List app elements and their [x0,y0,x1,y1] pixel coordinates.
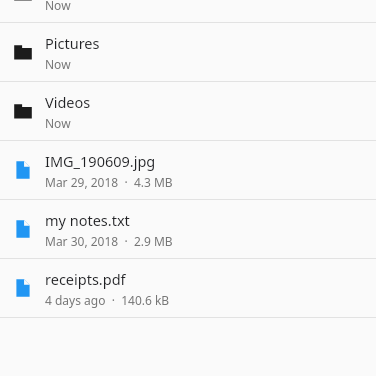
staticText: 4 days ago · 140.6 kB [45,292,170,308]
staticText: Now [45,0,71,13]
button[interactable]: File [0,200,376,258]
staticText: receipts.pdf [45,269,126,289]
staticText: IMG_190609.jpg [45,151,156,171]
button[interactable]: File [0,141,376,199]
staticText: Videos [45,92,91,112]
other: File [0,278,45,298]
other: Folder [0,101,45,121]
button[interactable]: Folder [0,23,376,81]
other: File [0,219,45,239]
staticText: Now [45,115,71,131]
staticText: Pictures [45,33,100,53]
staticText: my notes.txt [45,210,130,230]
staticText: Mar 29, 2018 · 4.3 MB [45,174,173,190]
button[interactable]: Folder [0,82,376,140]
staticText: Now [45,56,71,72]
other: Folder [0,0,45,3]
other: Folder [0,42,45,62]
button[interactable]: Folder [0,0,376,22]
other: File [0,160,45,180]
button[interactable]: File [0,259,376,317]
staticText: Mar 30, 2018 · 2.9 MB [45,233,173,249]
